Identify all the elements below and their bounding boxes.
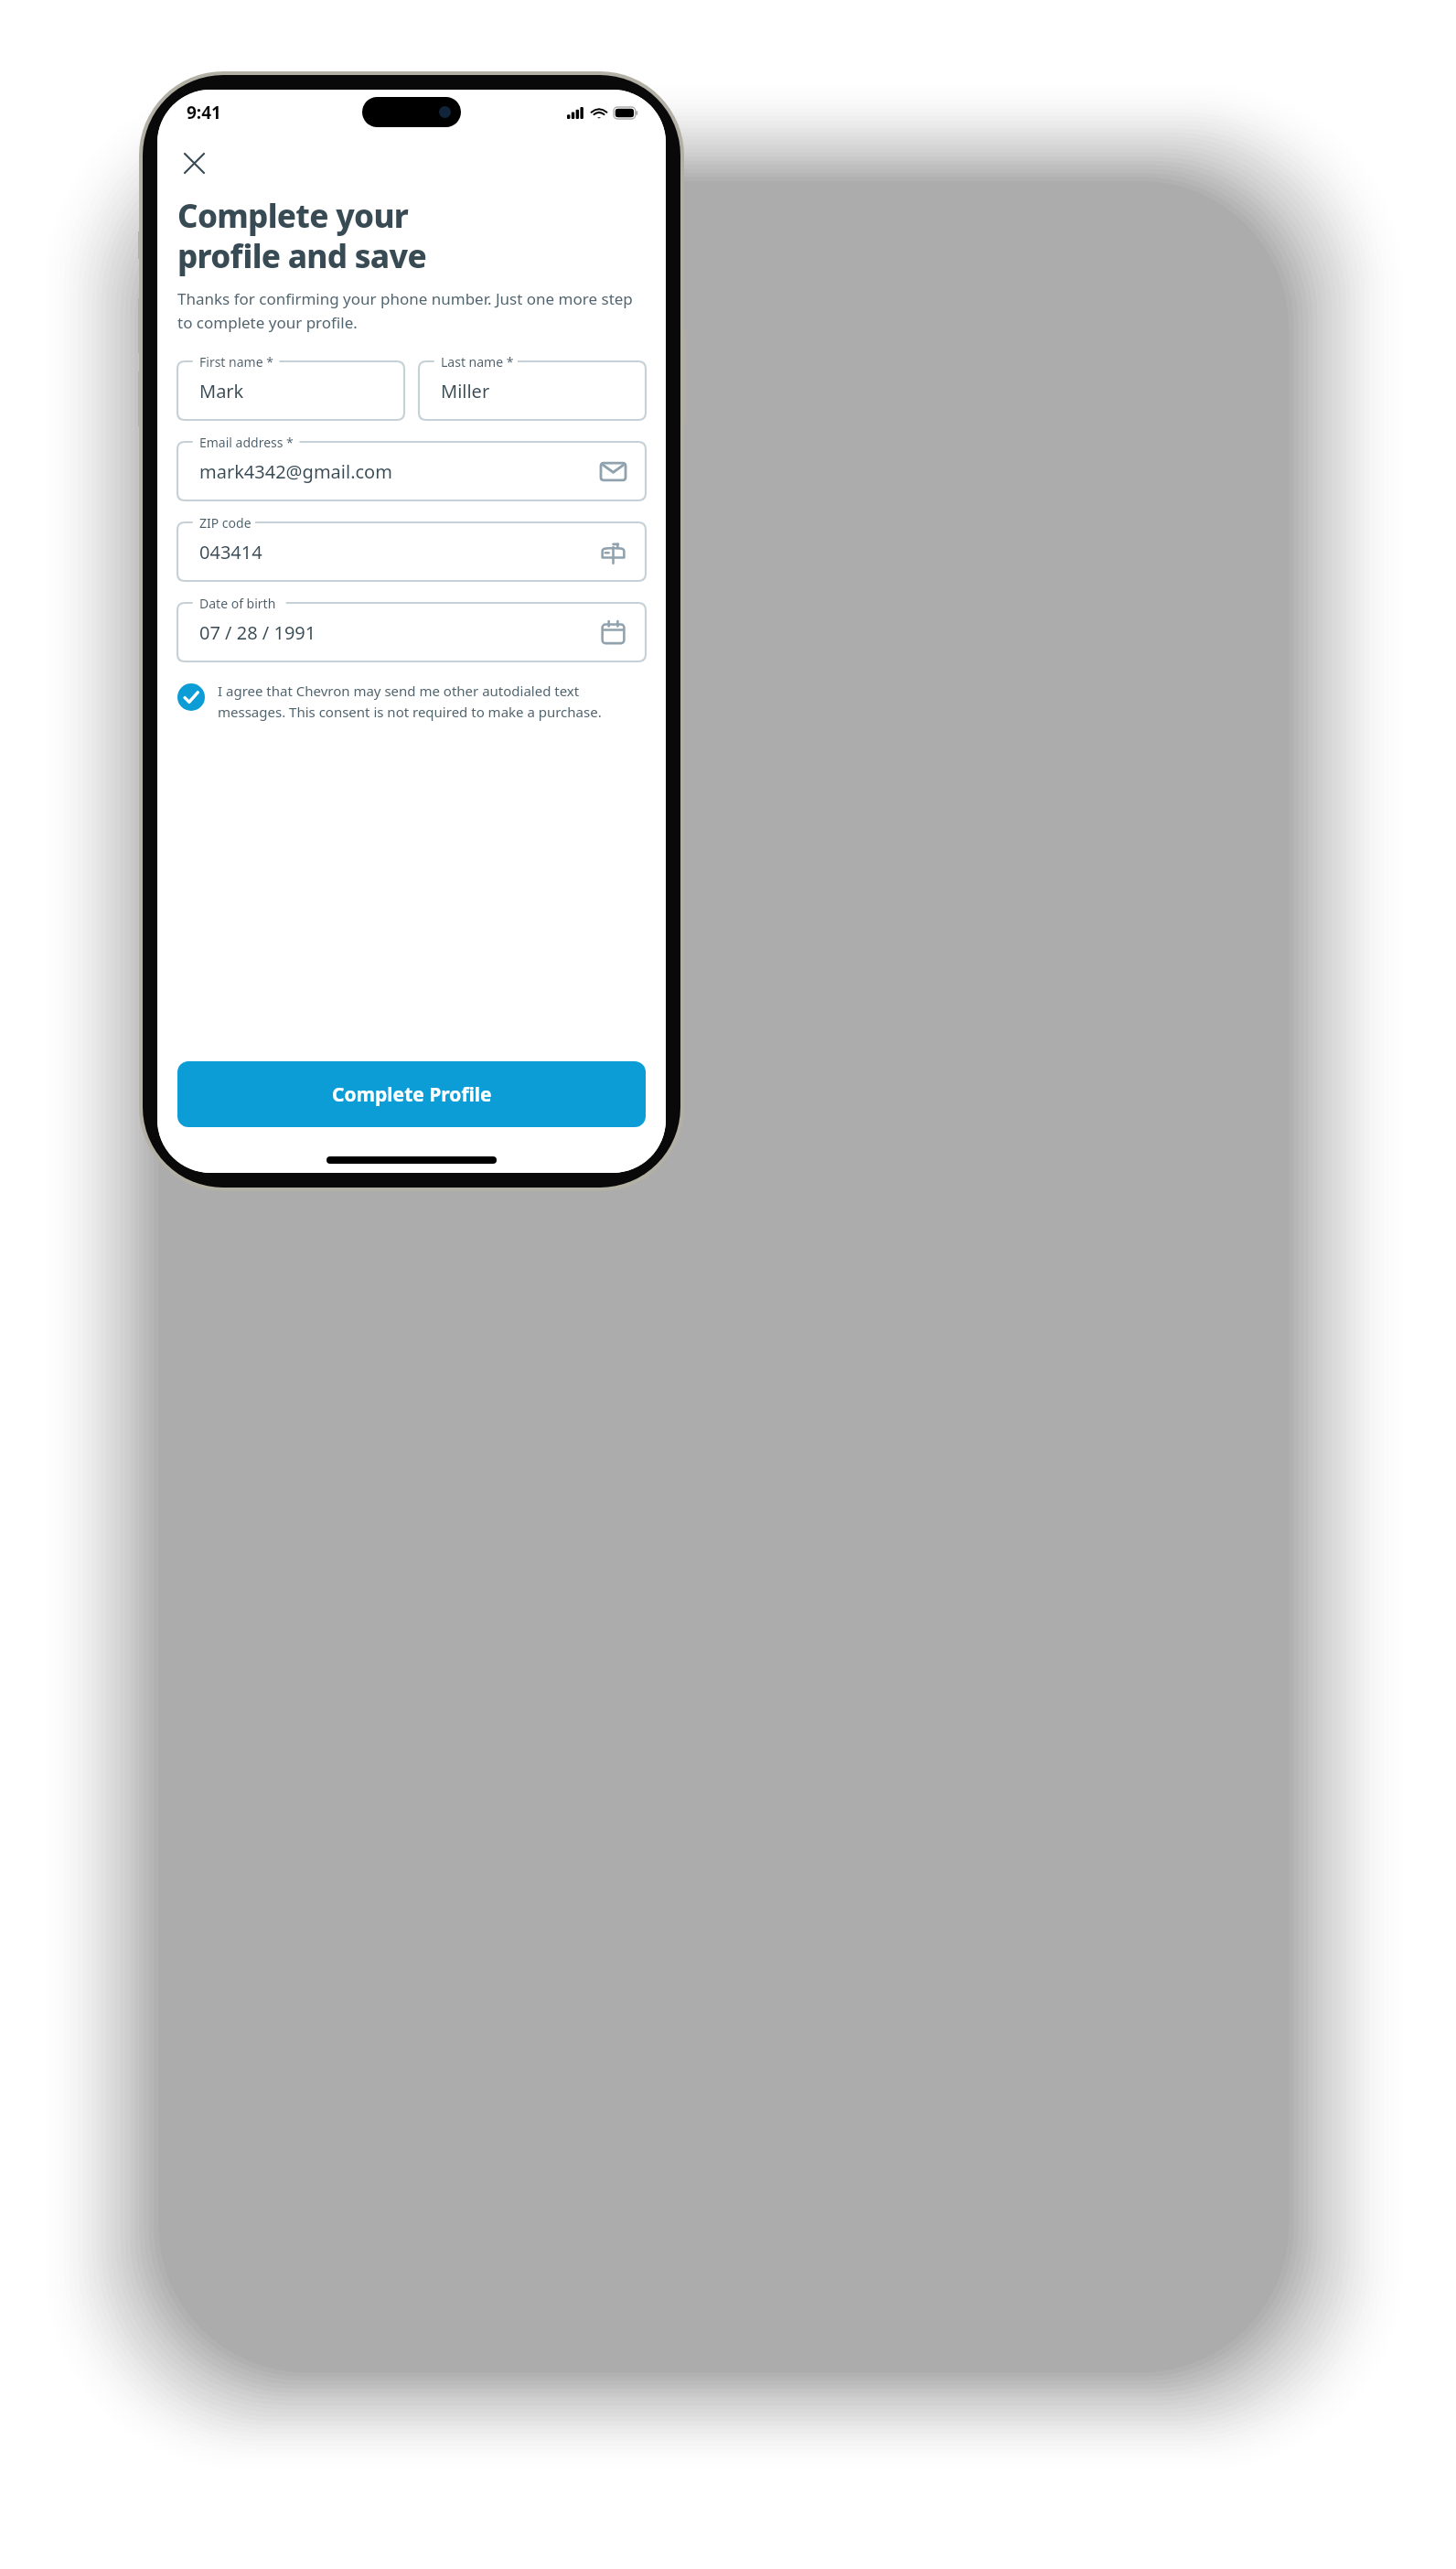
staticText: Date of birth — [199, 595, 276, 612]
staticText: 07 / 28 / 1991 — [199, 620, 316, 645]
button[interactable]: Last name * — [419, 353, 646, 420]
staticText: 9:41 — [187, 101, 221, 124]
staticText: First name * — [199, 353, 273, 371]
staticText: I agree that Chevron may send me other a… — [218, 682, 646, 721]
button[interactable]: Email — [593, 451, 633, 491]
button[interactable]: First name * — [177, 353, 404, 420]
button[interactable]: ZIP code — [593, 532, 633, 572]
staticText: ZIP code — [199, 514, 252, 532]
staticText: Miller — [441, 379, 490, 403]
staticText: mark4342@gmail.com — [199, 459, 392, 484]
staticText: Email address * — [199, 434, 294, 451]
staticText: Complete your profile and save — [177, 194, 426, 277]
button[interactable]: Complete Profile — [177, 1061, 646, 1127]
button[interactable]: I agree that Chevron may send me other a… — [177, 682, 646, 721]
button[interactable]: Email address * — [177, 434, 646, 500]
button[interactable]: Pick date — [593, 612, 633, 652]
staticText: Complete Profile — [332, 1081, 492, 1108]
staticText: Last name * — [441, 353, 514, 371]
staticText: 043414 — [199, 540, 262, 564]
button[interactable]: Date of birth — [177, 595, 646, 661]
button[interactable]: ZIP code — [177, 514, 646, 581]
staticText: Thanks for confirming your phone number.… — [177, 288, 646, 333]
staticText: Mark — [199, 379, 244, 403]
button[interactable]: Close — [177, 146, 210, 179]
